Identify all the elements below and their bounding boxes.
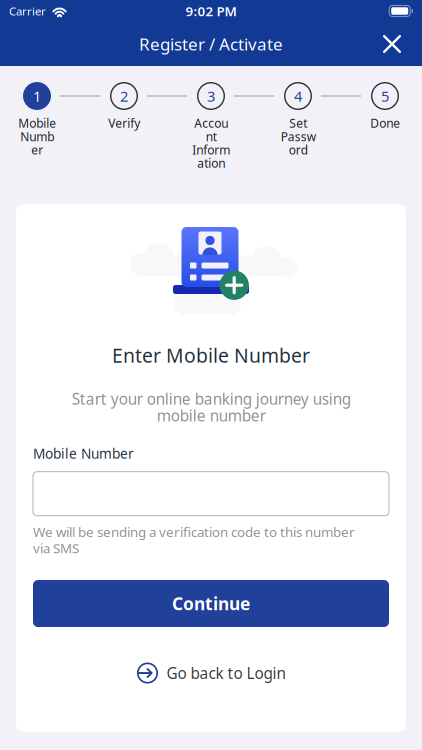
staticText: 5 xyxy=(381,86,389,106)
staticText: 2 xyxy=(120,86,128,106)
staticText: Verify xyxy=(108,115,140,131)
staticText: 3 xyxy=(207,86,215,106)
button[interactable]: Continue xyxy=(33,580,389,627)
staticText: Set Passw ord xyxy=(280,115,315,158)
staticText: Register / Activate xyxy=(139,32,283,56)
staticText: Go back to Login xyxy=(166,663,285,683)
staticText: Accou nt Inform ation xyxy=(192,115,230,171)
staticText: 1 xyxy=(33,86,41,106)
button[interactable]: Go back to Login xyxy=(33,650,389,696)
staticText: We will be sending a verification code t… xyxy=(33,523,355,557)
staticText: 9:02 PM xyxy=(185,2,236,20)
button[interactable]: Close xyxy=(377,29,407,59)
staticText: Mobile Numb er xyxy=(18,115,56,158)
staticText: Mobile Number xyxy=(33,444,134,463)
staticText: Done xyxy=(370,115,400,131)
staticText: Start your online banking journey using … xyxy=(71,388,350,426)
staticText: Continue xyxy=(172,592,250,615)
staticText: Enter Mobile Number xyxy=(112,342,310,368)
staticText: Carrier xyxy=(9,3,46,19)
staticText: 4 xyxy=(294,86,302,106)
